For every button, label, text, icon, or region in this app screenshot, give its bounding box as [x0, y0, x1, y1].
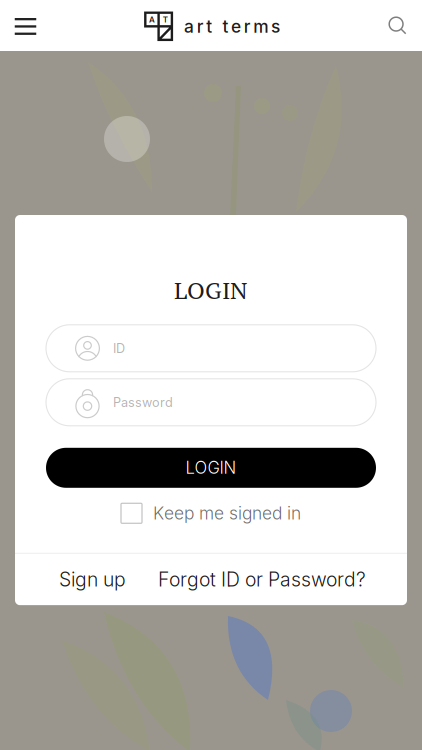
staticText: Password: [113, 395, 173, 410]
staticText: T: [163, 15, 168, 24]
staticText: art terms: [184, 16, 280, 37]
staticText: A: [149, 15, 155, 24]
staticText: Keep me signed in: [153, 503, 301, 524]
staticText: LOGIN: [185, 458, 236, 478]
staticText: Forgot ID or Password?: [158, 568, 366, 591]
button[interactable]: Menu: [0, 0, 51, 51]
button[interactable]: LOGIN: [46, 448, 376, 488]
button[interactable]: Sign up: [59, 554, 126, 605]
staticText: ID: [113, 341, 125, 356]
staticText: Sign up: [59, 568, 126, 591]
button[interactable]: Search: [371, 0, 422, 51]
staticText: LOGIN: [174, 274, 248, 306]
button[interactable]: Forgot ID or Password?: [158, 554, 366, 605]
button[interactable]: Keep me signed in: [121, 496, 301, 531]
